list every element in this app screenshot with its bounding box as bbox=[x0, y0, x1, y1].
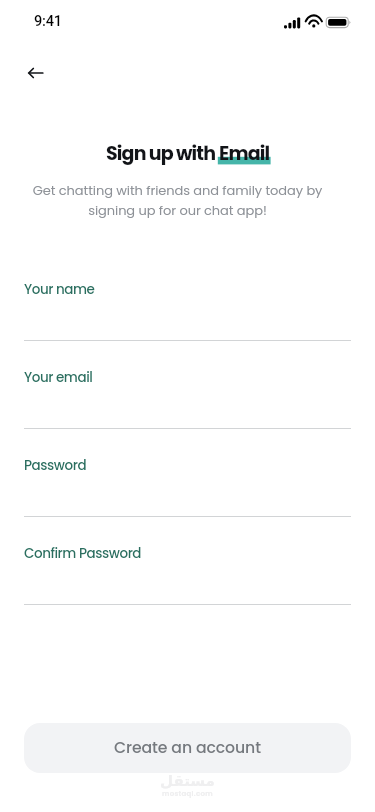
staticText: mostaql.com bbox=[162, 789, 213, 799]
staticText: Sign up with bbox=[106, 140, 219, 167]
button[interactable]: Create an account bbox=[24, 723, 351, 773]
staticText: مستقل bbox=[160, 772, 215, 789]
staticText: Confirm Password bbox=[24, 544, 142, 563]
button[interactable]: Your email bbox=[24, 368, 351, 429]
staticText: Your name bbox=[24, 280, 95, 299]
staticText: 9:41 bbox=[34, 12, 62, 29]
button[interactable]: Password bbox=[24, 456, 351, 517]
staticText: Get chatting with friends and family tod… bbox=[16, 181, 339, 220]
staticText: Email bbox=[219, 140, 270, 167]
staticText: Password bbox=[24, 456, 87, 475]
button[interactable]: Back bbox=[20, 57, 52, 89]
button[interactable]: Your name bbox=[24, 280, 351, 341]
staticText: Your email bbox=[24, 368, 93, 387]
button[interactable]: Confirm Password bbox=[24, 544, 351, 605]
staticText: Create an account bbox=[114, 737, 261, 759]
